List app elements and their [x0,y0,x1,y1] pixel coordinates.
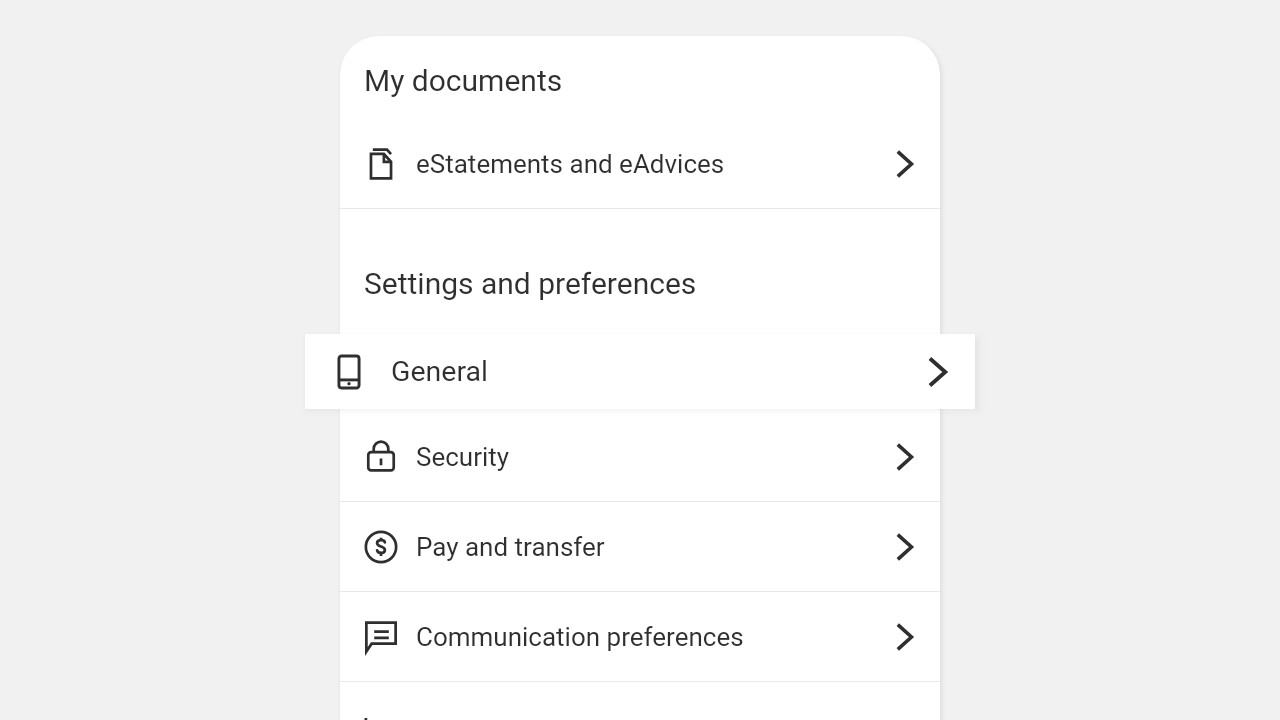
staticText: General [391,355,488,388]
button[interactable]: eStatements and eAdvices [340,120,940,208]
button[interactable]: Investments [340,717,940,720]
button[interactable]: Pay and transfer [340,502,940,591]
staticText: eStatements and eAdvices [416,149,725,179]
staticText: Settings and preferences [364,266,697,301]
button[interactable]: Security [340,412,940,501]
staticText: Security [416,442,510,472]
staticText: Pay and transfer [416,532,605,562]
staticText: My documents [364,63,563,98]
button[interactable]: Communication preferences [340,592,940,681]
staticText: Communication preferences [416,622,744,652]
button[interactable]: General [305,334,975,409]
